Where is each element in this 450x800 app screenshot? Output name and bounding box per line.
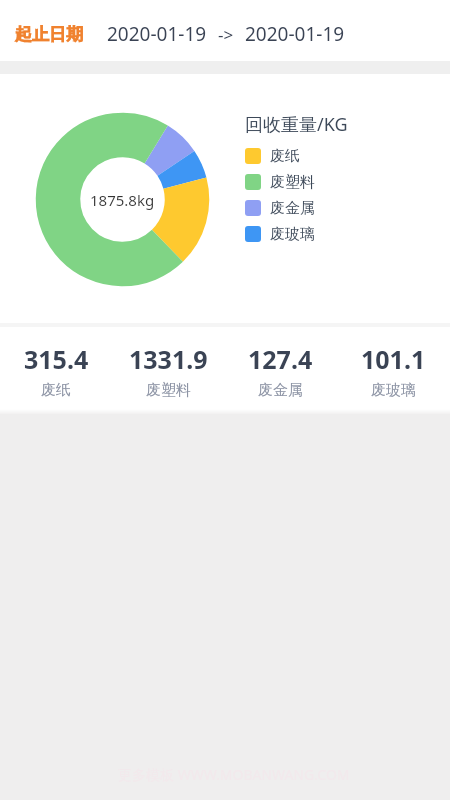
staticText: 废纸 bbox=[41, 381, 71, 400]
staticText: -> bbox=[218, 23, 234, 46]
staticText: 101.1 bbox=[361, 342, 426, 376]
staticText: 起止日期 bbox=[15, 24, 83, 45]
staticText: 废玻璃 bbox=[371, 381, 416, 400]
staticText: 315.4 bbox=[24, 342, 89, 376]
button[interactable]: 起止日期 bbox=[0, 0, 450, 61]
staticText: 废纸 bbox=[270, 147, 300, 166]
staticText: 回收重量/KG bbox=[245, 112, 348, 137]
staticText: 废玻璃 bbox=[270, 225, 315, 244]
staticText: 废金属 bbox=[270, 199, 315, 218]
staticText: 2020-01-19 bbox=[107, 21, 207, 47]
staticText: 2020-01-19 bbox=[245, 21, 345, 47]
staticText: 废金属 bbox=[258, 381, 303, 400]
staticText: 废塑料 bbox=[146, 381, 191, 400]
staticText: 1875.8kg bbox=[90, 190, 155, 210]
staticText: 1331.9 bbox=[129, 342, 208, 376]
staticText: 127.4 bbox=[248, 342, 313, 376]
staticText: 废塑料 bbox=[270, 173, 315, 192]
